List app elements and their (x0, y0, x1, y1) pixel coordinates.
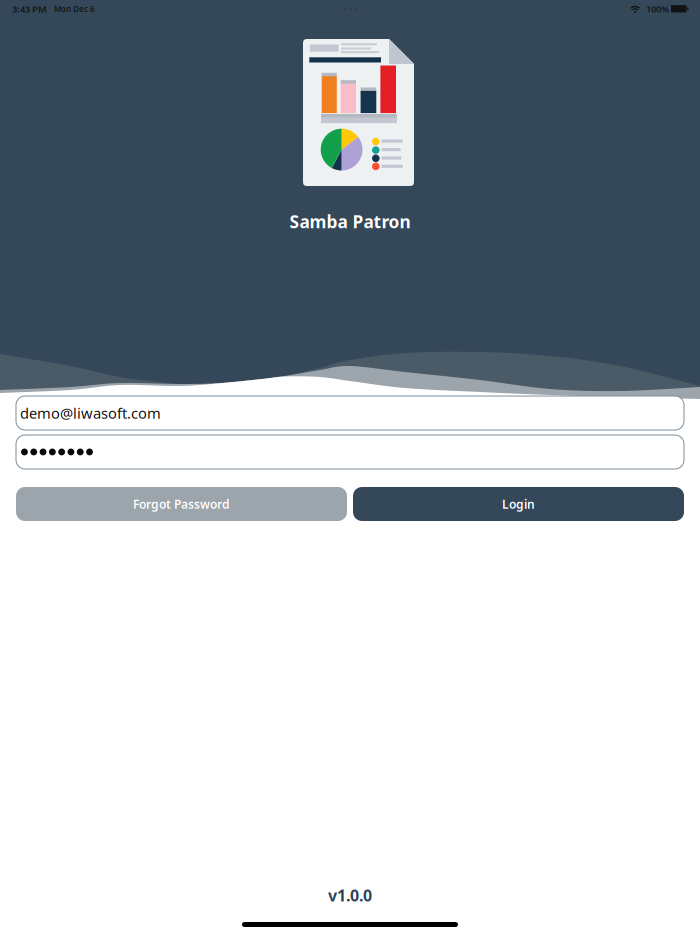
button[interactable]: Login (353, 487, 684, 521)
staticText: Mon Dec 6 (54, 4, 95, 14)
button[interactable]: Forgot Password (16, 487, 347, 521)
staticText: 3:43 PM (12, 3, 47, 15)
staticText: 100% (646, 3, 669, 15)
staticText: Samba Patron (289, 210, 410, 233)
staticText: Login (502, 496, 535, 512)
staticText: v1.0.0 (328, 885, 372, 906)
staticText: demo@liwasoft.com (20, 403, 161, 423)
button[interactable] (16, 435, 684, 469)
staticText: Forgot Password (133, 496, 230, 512)
button[interactable]: demo@liwasoft.com (16, 396, 684, 430)
